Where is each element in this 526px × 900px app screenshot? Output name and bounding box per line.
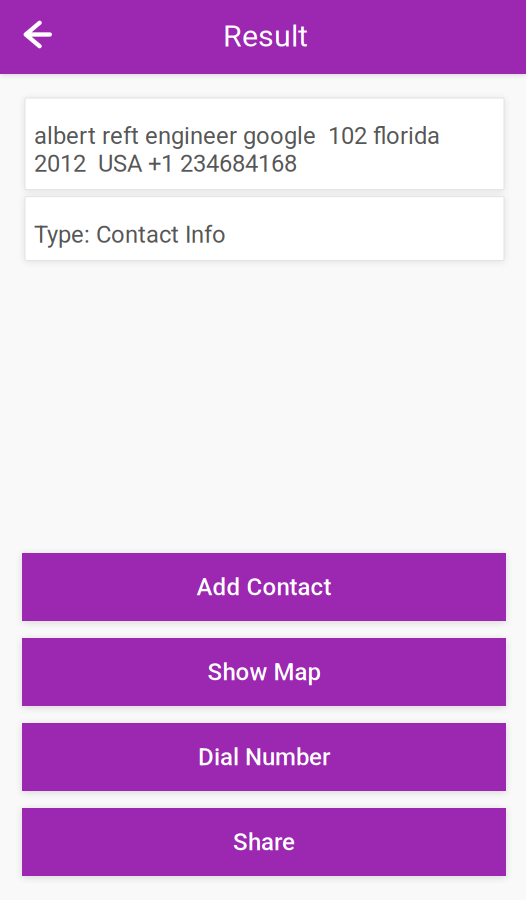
staticText: Share [233, 828, 295, 856]
staticText: Type: Contact Info [34, 221, 226, 248]
staticText: Dial Number [198, 743, 330, 771]
staticText: albert reft engineer google 102 florida … [34, 122, 440, 178]
staticText: Add Contact [196, 573, 331, 601]
staticText: Show Map [207, 658, 320, 686]
staticText: Result [223, 18, 308, 54]
button[interactable]: Add Contact [22, 553, 506, 621]
button[interactable]: Dial Number [22, 723, 506, 791]
button[interactable]: Share [22, 808, 506, 876]
button[interactable]: Show Map [22, 638, 506, 706]
button[interactable]: Back [0, 0, 68, 75]
